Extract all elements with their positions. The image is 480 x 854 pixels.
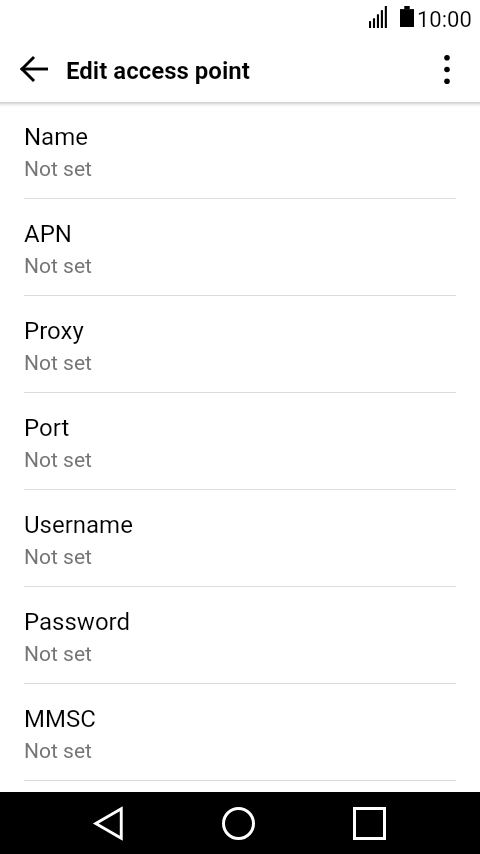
staticText: APN	[24, 220, 72, 248]
staticText: Not set	[24, 545, 92, 570]
staticText: Password	[24, 608, 131, 636]
button[interactable]: Back	[78, 793, 139, 854]
button[interactable]: Name	[0, 102, 480, 199]
button[interactable]: More options	[423, 45, 471, 93]
button[interactable]: APN	[0, 199, 480, 296]
staticText: Username	[24, 511, 133, 539]
staticText: Name	[24, 123, 88, 151]
button[interactable]: Password	[0, 587, 480, 684]
staticText: Not set	[24, 254, 92, 279]
staticText: Not set	[24, 351, 92, 376]
staticText: Edit access point	[66, 57, 250, 85]
staticText: Port	[24, 414, 70, 442]
button[interactable]: Home	[208, 793, 269, 854]
staticText: Not set	[24, 157, 92, 182]
button[interactable]: Port	[0, 393, 480, 490]
button[interactable]: MMSC	[0, 684, 480, 781]
staticText: Not set	[24, 448, 92, 473]
button[interactable]: Back	[11, 45, 59, 93]
staticText: Not set	[24, 642, 92, 667]
staticText: Proxy	[24, 317, 84, 345]
staticText: Not set	[24, 739, 92, 764]
staticText: 10:00	[417, 7, 472, 33]
staticText: MMSC	[24, 705, 96, 733]
button[interactable]: Username	[0, 490, 480, 587]
button[interactable]: Proxy	[0, 296, 480, 393]
button[interactable]: Recents	[339, 793, 400, 854]
